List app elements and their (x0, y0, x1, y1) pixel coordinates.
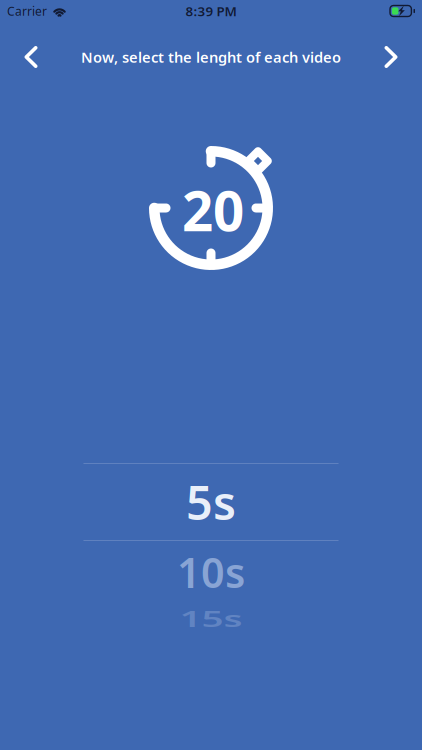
button[interactable]: 5s (83, 463, 338, 540)
button[interactable]: Next (368, 34, 414, 80)
staticText: 5s (186, 471, 236, 533)
staticText: 10s (177, 545, 245, 599)
staticText: Carrier (7, 3, 47, 19)
staticText: Now, select the lenght of each video (81, 47, 341, 67)
button[interactable]: Back (8, 34, 54, 80)
staticText: 8:39 PM (185, 2, 236, 20)
staticText: 20 (182, 174, 244, 246)
staticText: 15s (179, 593, 242, 644)
button[interactable]: 10s (83, 545, 338, 599)
button[interactable]: 15s (83, 601, 338, 635)
